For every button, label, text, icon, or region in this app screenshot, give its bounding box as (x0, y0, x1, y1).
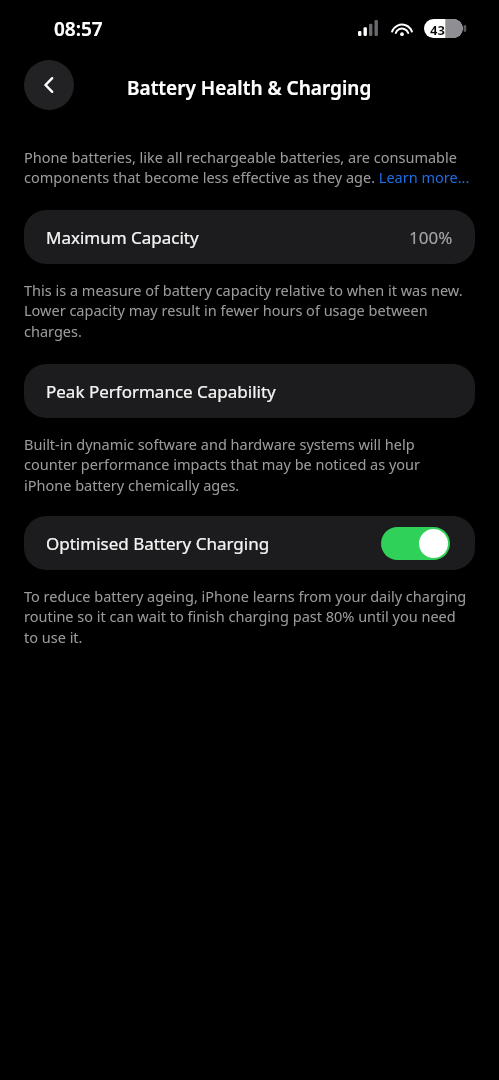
staticText: Battery Health & Charging (127, 75, 372, 101)
staticText: 100% (409, 226, 453, 249)
button[interactable]: Optimised Battery Charging (24, 516, 475, 570)
button[interactable]: Optimised Battery Charging toggle, on (381, 527, 450, 560)
button[interactable]: Peak Performance Capability (24, 364, 475, 418)
staticText: This is a measure of battery capacity re… (24, 280, 469, 342)
button[interactable]: Maximum Capacity (24, 210, 475, 264)
staticText: Maximum Capacity (46, 226, 199, 249)
staticText: Built-in dynamic software and hardware s… (24, 434, 469, 496)
staticText: Optimised Battery Charging (46, 532, 270, 555)
button[interactable]: Back (24, 60, 74, 110)
staticText: Phone batteries, like all rechargeable b… (24, 147, 471, 188)
staticText: 08:57 (54, 16, 103, 42)
staticText: Peak Performance Capability (46, 380, 276, 403)
staticText: 43 (430, 21, 445, 39)
staticText: To reduce battery ageing, iPhone learns … (24, 586, 469, 648)
